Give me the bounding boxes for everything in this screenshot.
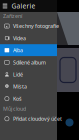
button[interactable]: Alba xyxy=(0,44,57,56)
button[interactable]: Videa xyxy=(0,32,57,44)
button[interactable]: Lidé xyxy=(0,68,57,80)
button[interactable]: Koš xyxy=(0,93,57,105)
staticText: Alba xyxy=(13,47,23,54)
staticText: Všechny fotografie xyxy=(13,22,59,30)
button[interactable]: Sdílené album xyxy=(0,56,57,68)
staticText: Lidé xyxy=(13,71,23,78)
button[interactable]: Všechny fotografie xyxy=(0,20,57,32)
staticText: Místa xyxy=(13,83,27,90)
staticText: Zařízení xyxy=(3,12,22,20)
staticText: Přidat cloudový účet xyxy=(13,115,62,122)
staticText: Galerie xyxy=(11,2,35,10)
staticText: Koš xyxy=(13,95,22,102)
button[interactable]: Přidat cloudový účet xyxy=(0,113,57,125)
staticText: Sdílené album xyxy=(13,59,46,66)
button[interactable]: Create xyxy=(65,118,73,126)
button[interactable]: Místa xyxy=(0,80,57,93)
button[interactable]: Menu xyxy=(0,0,10,12)
staticText: Videa xyxy=(13,35,26,42)
staticText: Můj cloud xyxy=(3,105,26,112)
